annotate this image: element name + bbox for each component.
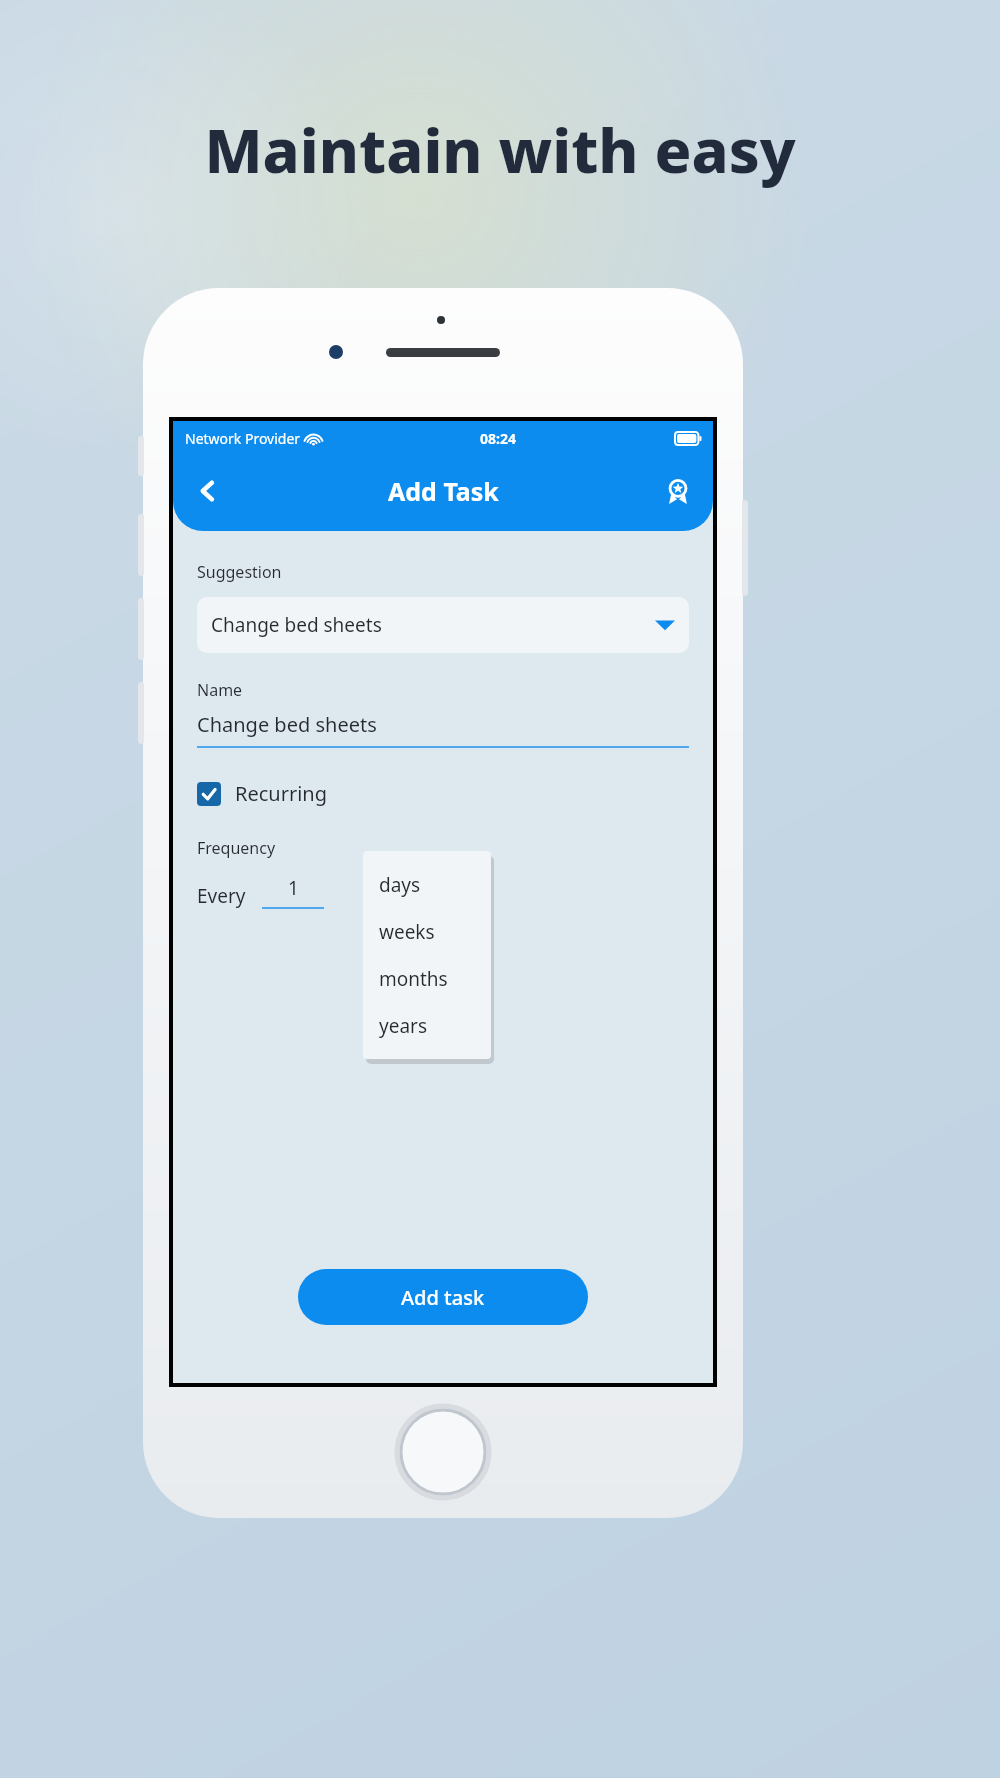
button[interactable]: Change bed sheets bbox=[197, 597, 689, 653]
staticText: Change bed sheets bbox=[197, 711, 377, 738]
staticText: 1 bbox=[288, 875, 299, 901]
staticText: Name bbox=[197, 679, 243, 701]
button[interactable]: days bbox=[379, 861, 491, 908]
button[interactable]: weeks bbox=[379, 908, 491, 955]
button[interactable]: Back bbox=[187, 470, 229, 512]
staticText: Network Provider bbox=[185, 429, 301, 448]
staticText: Frequency bbox=[197, 837, 276, 859]
staticText: Recurring bbox=[235, 780, 328, 807]
staticText: years bbox=[379, 1013, 428, 1039]
button[interactable]: Add task bbox=[298, 1269, 588, 1325]
button[interactable]: Achievements bbox=[657, 470, 699, 512]
staticText: Add Task bbox=[388, 474, 499, 508]
button[interactable]: 1 bbox=[262, 875, 324, 909]
staticText: Every bbox=[197, 883, 246, 909]
staticText: Change bed sheets bbox=[211, 612, 382, 638]
button[interactable]: Change bed sheets bbox=[197, 711, 689, 748]
staticText: days bbox=[379, 872, 421, 898]
staticText: Suggestion bbox=[197, 561, 282, 583]
staticText: Add task bbox=[401, 1284, 485, 1311]
button[interactable]: months bbox=[379, 955, 491, 1002]
button[interactable]: Recurring bbox=[197, 780, 328, 807]
staticText: 08:24 bbox=[480, 429, 516, 448]
staticText: months bbox=[379, 966, 448, 992]
staticText: weeks bbox=[379, 919, 435, 945]
staticText: Maintain with easy bbox=[204, 108, 796, 191]
button[interactable]: years bbox=[379, 1002, 491, 1049]
